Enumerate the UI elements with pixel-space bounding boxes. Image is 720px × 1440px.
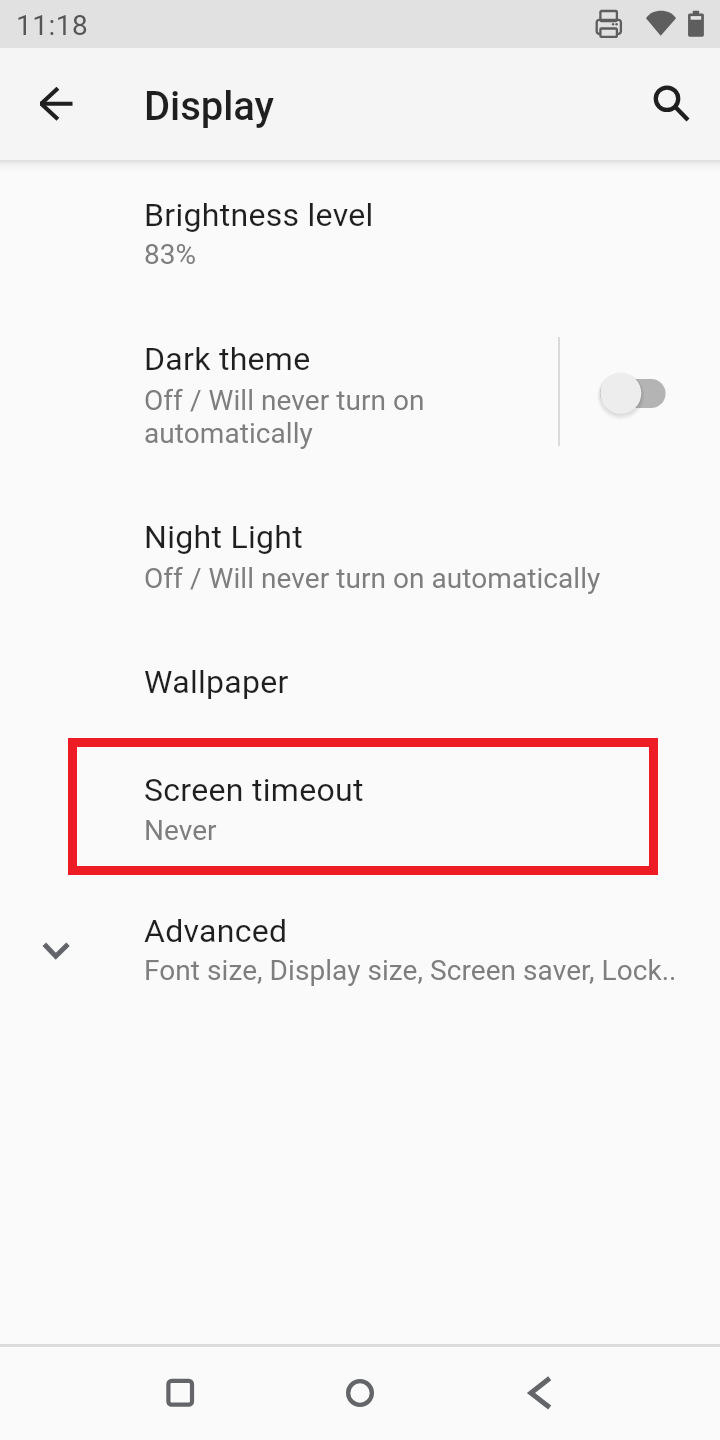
button[interactable]: Home xyxy=(312,1347,408,1440)
staticText: Dark theme xyxy=(144,340,311,378)
button[interactable]: Screen timeout xyxy=(0,737,720,880)
button[interactable]: Recent apps xyxy=(132,1347,228,1440)
staticText: 83% xyxy=(144,238,704,271)
staticText: Font size, Display size, Screen saver, L… xyxy=(144,954,704,987)
staticText: Wallpaper xyxy=(144,663,289,701)
staticText: Off / Will never turn on automatically xyxy=(144,384,564,450)
button[interactable]: Dark theme, off xyxy=(562,336,720,450)
staticText: Screen timeout xyxy=(144,771,364,809)
button[interactable]: Wallpaper xyxy=(0,629,720,737)
button[interactable]: Advanced xyxy=(0,880,720,1022)
staticText: Brightness level xyxy=(144,196,374,234)
staticText: Display xyxy=(144,83,274,130)
staticText: Off / Will never turn on automatically xyxy=(144,562,704,595)
button[interactable]: Dark theme xyxy=(0,303,558,483)
button[interactable]: Search xyxy=(619,56,715,152)
button[interactable]: Expand advanced settings xyxy=(10,900,110,994)
staticText: Never xyxy=(144,814,704,847)
button[interactable]: Night Light xyxy=(0,483,720,629)
button[interactable]: Brightness level xyxy=(0,164,720,303)
staticText: 11:18 xyxy=(16,9,89,42)
button[interactable]: Back xyxy=(492,1347,588,1440)
button[interactable]: Navigate up xyxy=(8,56,104,152)
staticText: Night Light xyxy=(144,518,303,556)
staticText: Advanced xyxy=(144,912,288,950)
